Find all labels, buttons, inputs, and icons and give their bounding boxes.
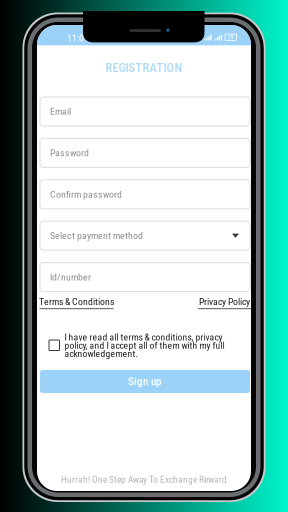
button[interactable]: Password (40, 138, 250, 167)
button[interactable]: Select payment method (40, 221, 250, 250)
button[interactable]: Privacy Policy (198, 296, 251, 309)
button[interactable]: Accept terms and conditions (49, 340, 59, 350)
staticText: 11:01 (67, 32, 89, 44)
button[interactable]: Id/number (40, 263, 250, 292)
button[interactable]: Confirm password (40, 180, 250, 209)
staticText: I have read all terms & conditions, priv… (64, 331, 224, 359)
staticText: Sign up (128, 375, 162, 388)
button[interactable]: Terms & Conditions (39, 296, 114, 309)
staticText: Id/number (50, 271, 91, 283)
staticText: Terms & Conditions (39, 296, 114, 307)
staticText: Password (50, 147, 89, 159)
staticText: Select payment method (50, 230, 143, 241)
button[interactable]: Email (40, 97, 250, 126)
staticText: Confirm password (50, 188, 122, 200)
button[interactable]: Sign up (40, 370, 250, 393)
staticText: Privacy Policy (199, 296, 250, 307)
staticText: REGISTRATION (105, 60, 182, 75)
staticText: 29 (228, 34, 234, 41)
staticText: Email (50, 106, 71, 117)
staticText: Hurrah! One Step Away To Exchange Reward (61, 474, 227, 485)
